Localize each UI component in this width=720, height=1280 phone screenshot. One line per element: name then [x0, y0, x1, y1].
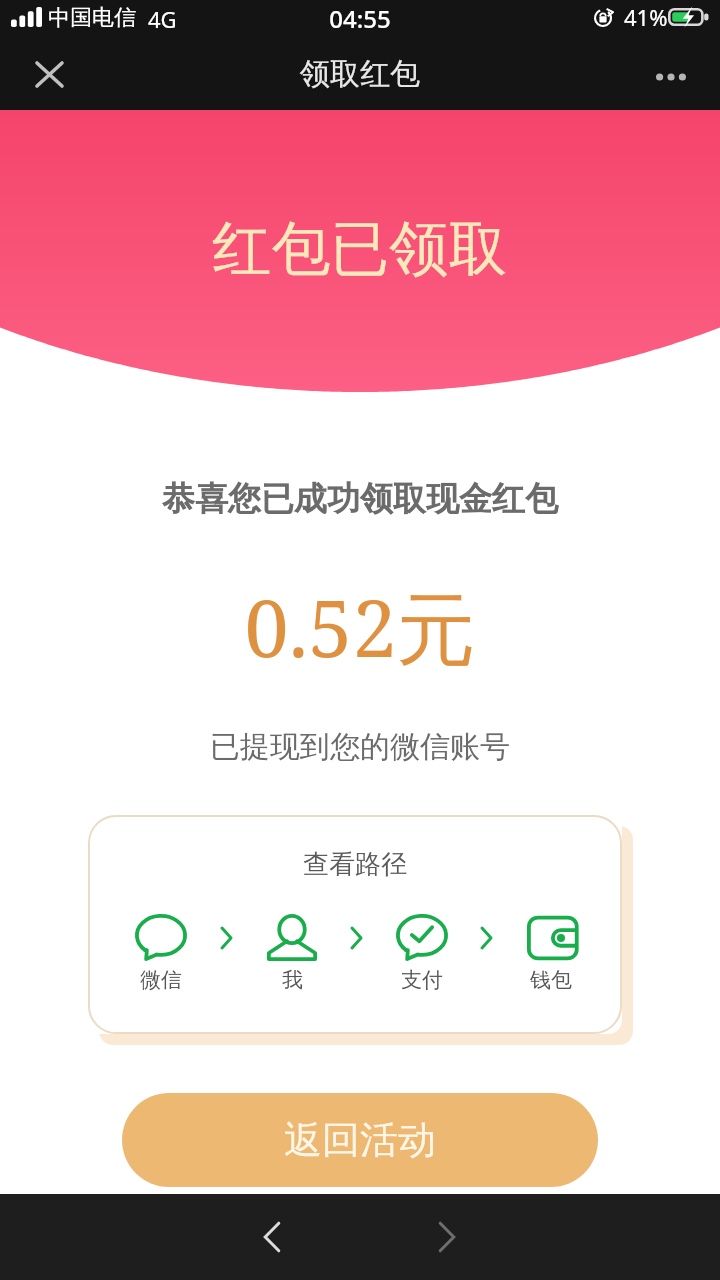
staticText: 支付 [401, 967, 443, 993]
staticText: 红包已领取 [0, 212, 720, 286]
staticText: 领取红包 [300, 55, 420, 93]
button[interactable]: Back [227, 1194, 317, 1280]
staticText: 41% [624, 2, 668, 32]
button[interactable]: 查看路径 [88, 815, 622, 1034]
staticText: 我 [282, 967, 303, 993]
button[interactable]: Forward [402, 1194, 492, 1280]
staticText: 04:55 [0, 2, 720, 35]
button[interactable]: 支付 [380, 914, 464, 993]
staticText: 微信 [140, 967, 182, 993]
staticText: 0.52元 [0, 573, 720, 681]
staticText: 钱包 [530, 967, 572, 993]
button[interactable]: 钱包 [509, 914, 593, 993]
button[interactable]: More options [638, 44, 704, 110]
staticText: 4G [148, 4, 177, 34]
staticText: 查看路径 [303, 848, 407, 881]
button[interactable]: Close [16, 41, 82, 107]
staticText: 返回活动 [284, 1116, 436, 1164]
staticText: 中国电信 [48, 4, 136, 32]
button[interactable]: 返回活动 [122, 1093, 598, 1187]
button[interactable]: 微信 [119, 914, 203, 993]
staticText: 已提现到您的微信账号 [0, 728, 720, 766]
staticText: 恭喜您已成功领取现金红包 [0, 478, 720, 520]
button[interactable]: 我 [250, 914, 334, 993]
